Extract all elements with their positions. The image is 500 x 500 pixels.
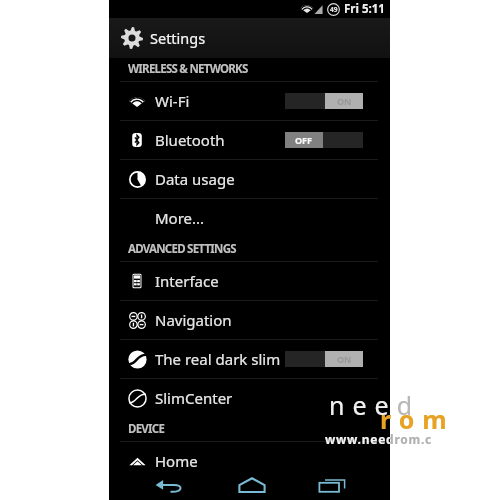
staticText: Bluetooth bbox=[155, 130, 225, 150]
button[interactable]: The real dark slim bbox=[109, 340, 390, 379]
button[interactable]: Home bbox=[109, 442, 390, 481]
staticText: need bbox=[329, 388, 390, 422]
staticText: rom bbox=[380, 402, 390, 436]
staticText: www.needrom.com bbox=[390, 431, 435, 463]
button[interactable]: Interface bbox=[109, 262, 390, 301]
staticText: OFF bbox=[295, 134, 313, 146]
staticText: More... bbox=[155, 208, 205, 228]
button[interactable]: Recent apps bbox=[294, 470, 370, 500]
staticText: www.needrom.com bbox=[325, 431, 390, 447]
button[interactable]: Back bbox=[131, 470, 207, 500]
button[interactable]: Settings bbox=[109, 18, 390, 58]
staticText: rom bbox=[390, 402, 455, 436]
staticText: ON bbox=[337, 353, 352, 365]
button[interactable]: Wi-Fi bbox=[109, 82, 390, 121]
staticText: ON bbox=[337, 95, 352, 107]
button[interactable]: Bluetooth bbox=[109, 121, 390, 160]
button[interactable]: Data usage bbox=[109, 160, 390, 199]
button[interactable]: ON bbox=[285, 93, 363, 109]
staticText: Wi-Fi bbox=[155, 91, 190, 111]
staticText: SlimCenter bbox=[155, 388, 233, 408]
button[interactable]: OFF bbox=[285, 132, 363, 148]
staticText: need bbox=[390, 388, 421, 422]
staticText: Settings bbox=[150, 28, 206, 48]
staticText: Data usage bbox=[155, 169, 235, 189]
staticText: Home bbox=[155, 451, 198, 471]
button[interactable]: Navigation bbox=[109, 301, 390, 340]
staticText: Fri 5:11 bbox=[344, 1, 385, 17]
staticText: ADVANCED SETTINGS bbox=[128, 241, 236, 257]
button[interactable]: More... bbox=[109, 199, 390, 238]
staticText: DEVICE bbox=[128, 421, 165, 437]
staticText: The real dark slim bbox=[155, 349, 281, 369]
staticText: Navigation bbox=[155, 310, 232, 330]
staticText: 49 bbox=[330, 5, 338, 14]
staticText: Interface bbox=[155, 271, 219, 291]
button[interactable]: ON bbox=[285, 351, 363, 367]
button[interactable]: SlimCenter bbox=[109, 379, 390, 418]
button[interactable]: Home bbox=[214, 470, 290, 500]
staticText: WIRELESS & NETWORKS bbox=[128, 61, 248, 77]
